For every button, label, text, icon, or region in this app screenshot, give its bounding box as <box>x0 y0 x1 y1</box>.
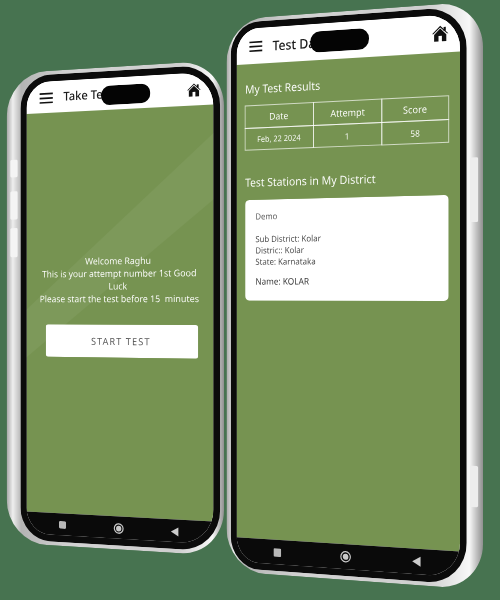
button[interactable]: Menu <box>35 86 56 110</box>
staticText: Attempt <box>330 105 365 120</box>
staticText: Date <box>269 108 289 123</box>
staticText: Welcome Raghu <box>85 254 151 267</box>
button[interactable]: Home <box>336 545 355 568</box>
staticText: 1 <box>345 130 350 141</box>
button[interactable]: Menu <box>245 34 266 58</box>
staticText: Please start the test before 15 minutes <box>40 292 199 305</box>
staticText: Score <box>403 102 427 117</box>
button[interactable]: Demo <box>245 195 449 301</box>
button[interactable]: Recents <box>53 514 72 536</box>
staticText: Sub District: Kolar <box>255 232 321 244</box>
button[interactable]: Home <box>108 517 128 539</box>
staticText: Name: KOLAR <box>255 275 309 287</box>
staticText: Demo <box>255 210 278 221</box>
staticText: Test Stations in My District <box>245 170 376 190</box>
staticText: Distric:: Kolar <box>255 243 305 255</box>
staticText: START TEST <box>91 334 151 348</box>
button[interactable]: Back <box>164 520 185 543</box>
button[interactable]: Recents <box>267 541 286 563</box>
button[interactable]: Back <box>406 550 426 573</box>
staticText: My Test Results <box>245 77 321 96</box>
staticText: Test Dashboard <box>273 30 365 54</box>
button[interactable]: START TEST <box>46 324 198 359</box>
button[interactable]: Home <box>429 21 451 46</box>
staticText: 58 <box>410 127 420 139</box>
staticText: State: Karnataka <box>255 255 316 267</box>
button[interactable]: Home <box>182 77 205 102</box>
staticText: Take Test <box>63 85 113 104</box>
staticText: This is your attempt number 1st Good Luc… <box>33 266 206 293</box>
staticText: Feb, 22 2024 <box>257 132 301 145</box>
